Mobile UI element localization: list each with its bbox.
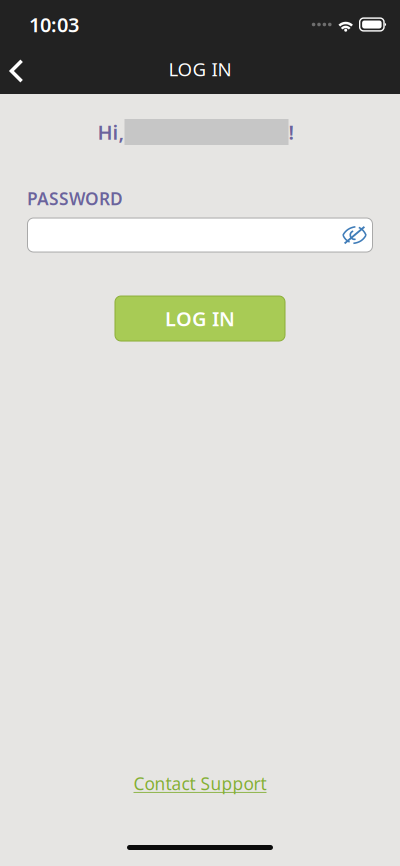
staticText: PASSWORD: [27, 187, 123, 210]
button[interactable]: Contact Support: [117, 763, 282, 804]
staticText: Contact Support: [133, 772, 266, 795]
button[interactable]: Show password: [336, 217, 372, 252]
staticText: 10:03: [29, 11, 79, 38]
button[interactable]: LOG IN: [115, 296, 285, 341]
staticText: !: [288, 119, 294, 145]
staticText: LOG IN: [165, 305, 235, 332]
staticText: Hi,: [97, 119, 124, 145]
button[interactable]: Back: [0, 45, 33, 93]
staticText: [203, 116, 209, 148]
staticText: LOG IN: [168, 57, 231, 81]
